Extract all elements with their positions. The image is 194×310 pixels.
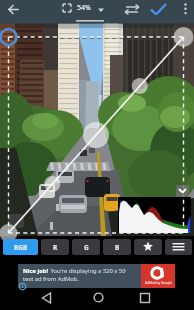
staticText: AdMob by Google	[145, 281, 172, 285]
button[interactable]	[58, 0, 76, 23]
button[interactable]: 54%	[74, 0, 106, 23]
staticText: Nice job!	[23, 267, 49, 275]
button[interactable]	[165, 239, 192, 255]
button[interactable]	[2, 0, 26, 23]
button[interactable]	[88, 289, 108, 307]
button[interactable]	[19, 283, 26, 290]
staticText: R	[53, 243, 58, 252]
button[interactable]	[146, 0, 172, 23]
button[interactable]	[122, 0, 144, 23]
staticText: test ad from AdMob.	[23, 275, 79, 283]
staticText: You're displaying a 320 x 50	[49, 267, 126, 275]
staticText: 54%	[77, 3, 91, 13]
button[interactable]	[178, 0, 194, 23]
button[interactable]	[37, 289, 57, 307]
staticText: G	[84, 243, 89, 252]
button[interactable]	[135, 289, 155, 307]
button[interactable]: B	[103, 239, 131, 255]
staticText: RGB	[14, 243, 28, 252]
button[interactable]	[134, 239, 162, 255]
button[interactable]: G	[72, 239, 100, 255]
staticText: B	[115, 243, 120, 252]
button[interactable]	[176, 185, 189, 197]
button[interactable]: RGB	[3, 239, 38, 255]
button[interactable]: Nice job!	[18, 264, 175, 288]
button[interactable]: R	[41, 239, 69, 255]
